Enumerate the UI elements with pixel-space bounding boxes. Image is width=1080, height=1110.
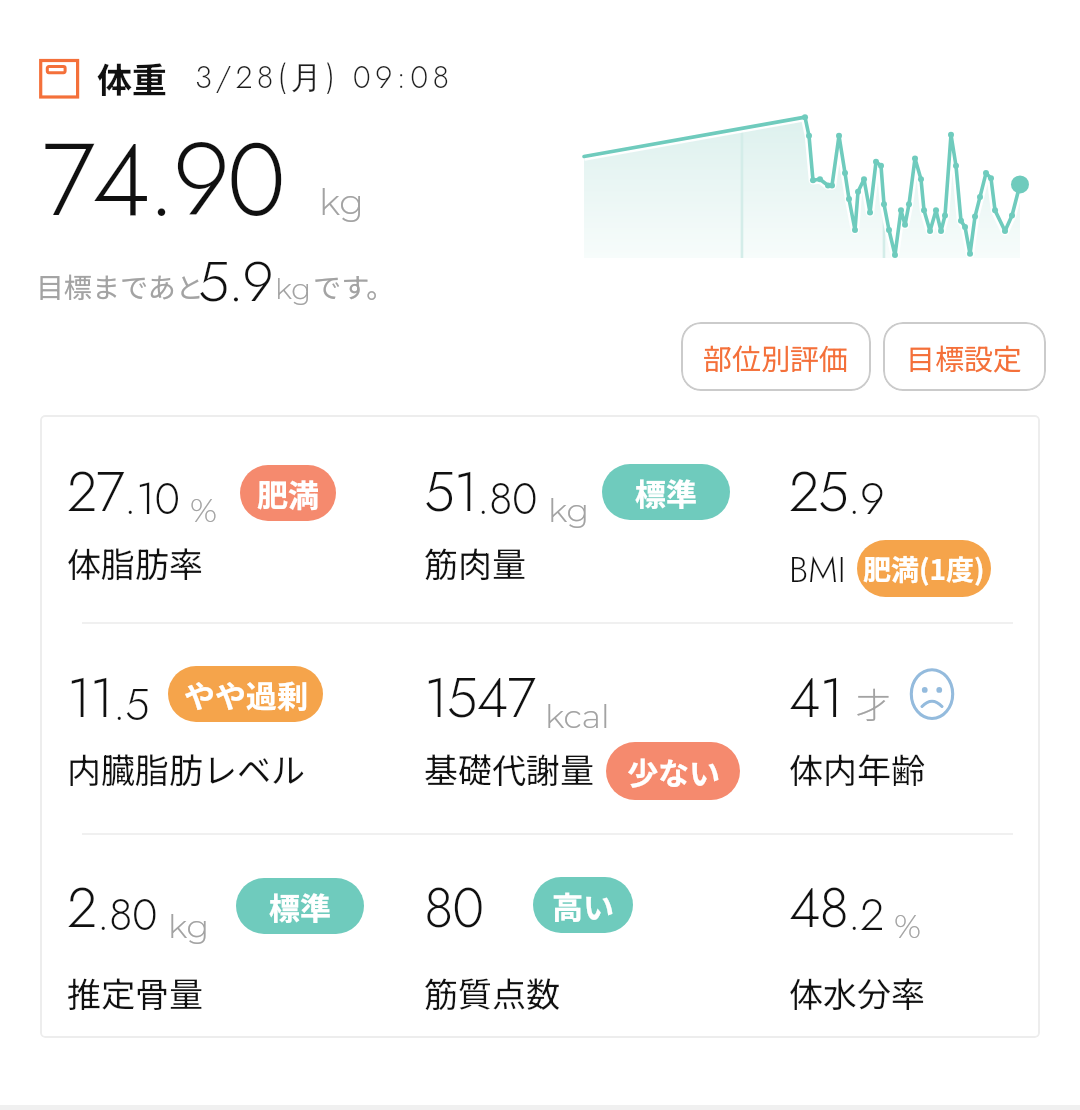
staticText: 目標まであと bbox=[36, 266, 204, 307]
button[interactable]: 内臓脂肪レベル bbox=[67, 744, 305, 793]
staticText: 体内年齢 bbox=[789, 744, 925, 793]
staticText: kg bbox=[168, 906, 210, 946]
staticText: 部位別評価 bbox=[703, 336, 849, 378]
staticText: 肥満 bbox=[257, 471, 319, 516]
button[interactable]: 筋肉量 bbox=[424, 538, 526, 587]
button[interactable]: 少ない bbox=[606, 742, 740, 800]
other: Weight scale bbox=[36, 55, 82, 101]
staticText: 80 bbox=[424, 868, 484, 947]
staticText: 体重 bbox=[97, 52, 168, 103]
staticText: です。 bbox=[313, 266, 395, 307]
button[interactable]: BMI bbox=[789, 543, 846, 595]
button[interactable]: 体内年齢 bbox=[789, 744, 925, 793]
staticText: kcal bbox=[545, 696, 610, 736]
staticText: 基礎代謝量 bbox=[424, 744, 594, 793]
staticText: 体水分率 bbox=[789, 968, 925, 1017]
staticText: 少ない bbox=[627, 749, 720, 794]
button[interactable]: 筋質点数 bbox=[424, 968, 560, 1017]
button[interactable]: 高い bbox=[533, 877, 633, 933]
button[interactable]: 25 bbox=[789, 452, 885, 531]
button[interactable]: 肥満 bbox=[240, 465, 336, 521]
button[interactable]: 目標設定 bbox=[883, 322, 1046, 391]
other: Body age rating bbox=[907, 664, 957, 723]
staticText: 高い bbox=[552, 883, 614, 928]
staticText: 2 bbox=[67, 868, 97, 947]
button[interactable]: 11 bbox=[67, 658, 150, 737]
staticText: 3/28(月) 09:08 bbox=[195, 55, 454, 100]
staticText: 1547 bbox=[424, 658, 535, 737]
staticText: .10 bbox=[124, 467, 180, 531]
staticText: 才 bbox=[856, 677, 892, 728]
button[interactable]: 標準 bbox=[602, 464, 730, 520]
staticText: 肥満(1度) bbox=[863, 548, 985, 589]
button[interactable]: 体水分率 bbox=[789, 968, 925, 1017]
staticText: やや過剰 bbox=[184, 672, 308, 717]
button[interactable]: 目標まであと bbox=[36, 266, 395, 307]
button[interactable]: 41 bbox=[789, 658, 843, 737]
staticText: .5 bbox=[113, 673, 150, 737]
button[interactable]: 48 bbox=[789, 868, 921, 947]
staticText: 標準 bbox=[269, 884, 331, 929]
staticText: 標準 bbox=[635, 470, 697, 515]
button[interactable]: Weight scale bbox=[36, 52, 454, 103]
staticText: .80 bbox=[97, 883, 158, 947]
staticText: 27 bbox=[67, 452, 124, 531]
button[interactable]: 体脂肪率 bbox=[67, 538, 203, 587]
button[interactable]: 2 bbox=[67, 868, 210, 947]
button[interactable]: やや過剰 bbox=[168, 666, 323, 722]
staticText: 目標設定 bbox=[906, 336, 1023, 378]
button[interactable]: 基礎代謝量 bbox=[424, 744, 594, 793]
staticText: 74.90 bbox=[42, 106, 283, 253]
staticText: 41 bbox=[789, 658, 843, 737]
button[interactable]: 標準 bbox=[236, 878, 364, 934]
button[interactable]: 80 bbox=[424, 868, 484, 947]
staticText: BMI bbox=[789, 543, 846, 595]
staticText: kg bbox=[319, 180, 364, 224]
button[interactable]: 74.90 bbox=[42, 106, 283, 253]
staticText: 25 bbox=[789, 452, 848, 531]
staticText: .80 bbox=[477, 467, 538, 531]
button[interactable]: 肥満(1度) bbox=[857, 540, 991, 597]
staticText: .2 bbox=[848, 883, 884, 947]
staticText: 筋質点数 bbox=[424, 968, 560, 1017]
button[interactable]: 推定骨量 bbox=[67, 968, 203, 1017]
staticText: 51 bbox=[424, 452, 477, 531]
staticText: 48 bbox=[789, 868, 848, 947]
staticText: .9 bbox=[848, 467, 885, 531]
button[interactable]: 1547 bbox=[424, 658, 610, 737]
staticText: 5.9 bbox=[198, 241, 273, 322]
staticText: % bbox=[894, 906, 921, 946]
button[interactable]: 51 bbox=[424, 452, 590, 531]
staticText: 11 bbox=[67, 658, 113, 737]
button[interactable]: 27 bbox=[67, 452, 217, 531]
staticText: % bbox=[190, 490, 217, 530]
button[interactable]: 部位別評価 bbox=[681, 322, 871, 391]
staticText: 筋肉量 bbox=[424, 538, 526, 587]
staticText: kg bbox=[275, 271, 312, 306]
staticText: 体脂肪率 bbox=[67, 538, 203, 587]
staticText: 内臓脂肪レベル bbox=[67, 744, 305, 793]
staticText: 推定骨量 bbox=[67, 968, 203, 1017]
staticText: kg bbox=[548, 490, 590, 530]
